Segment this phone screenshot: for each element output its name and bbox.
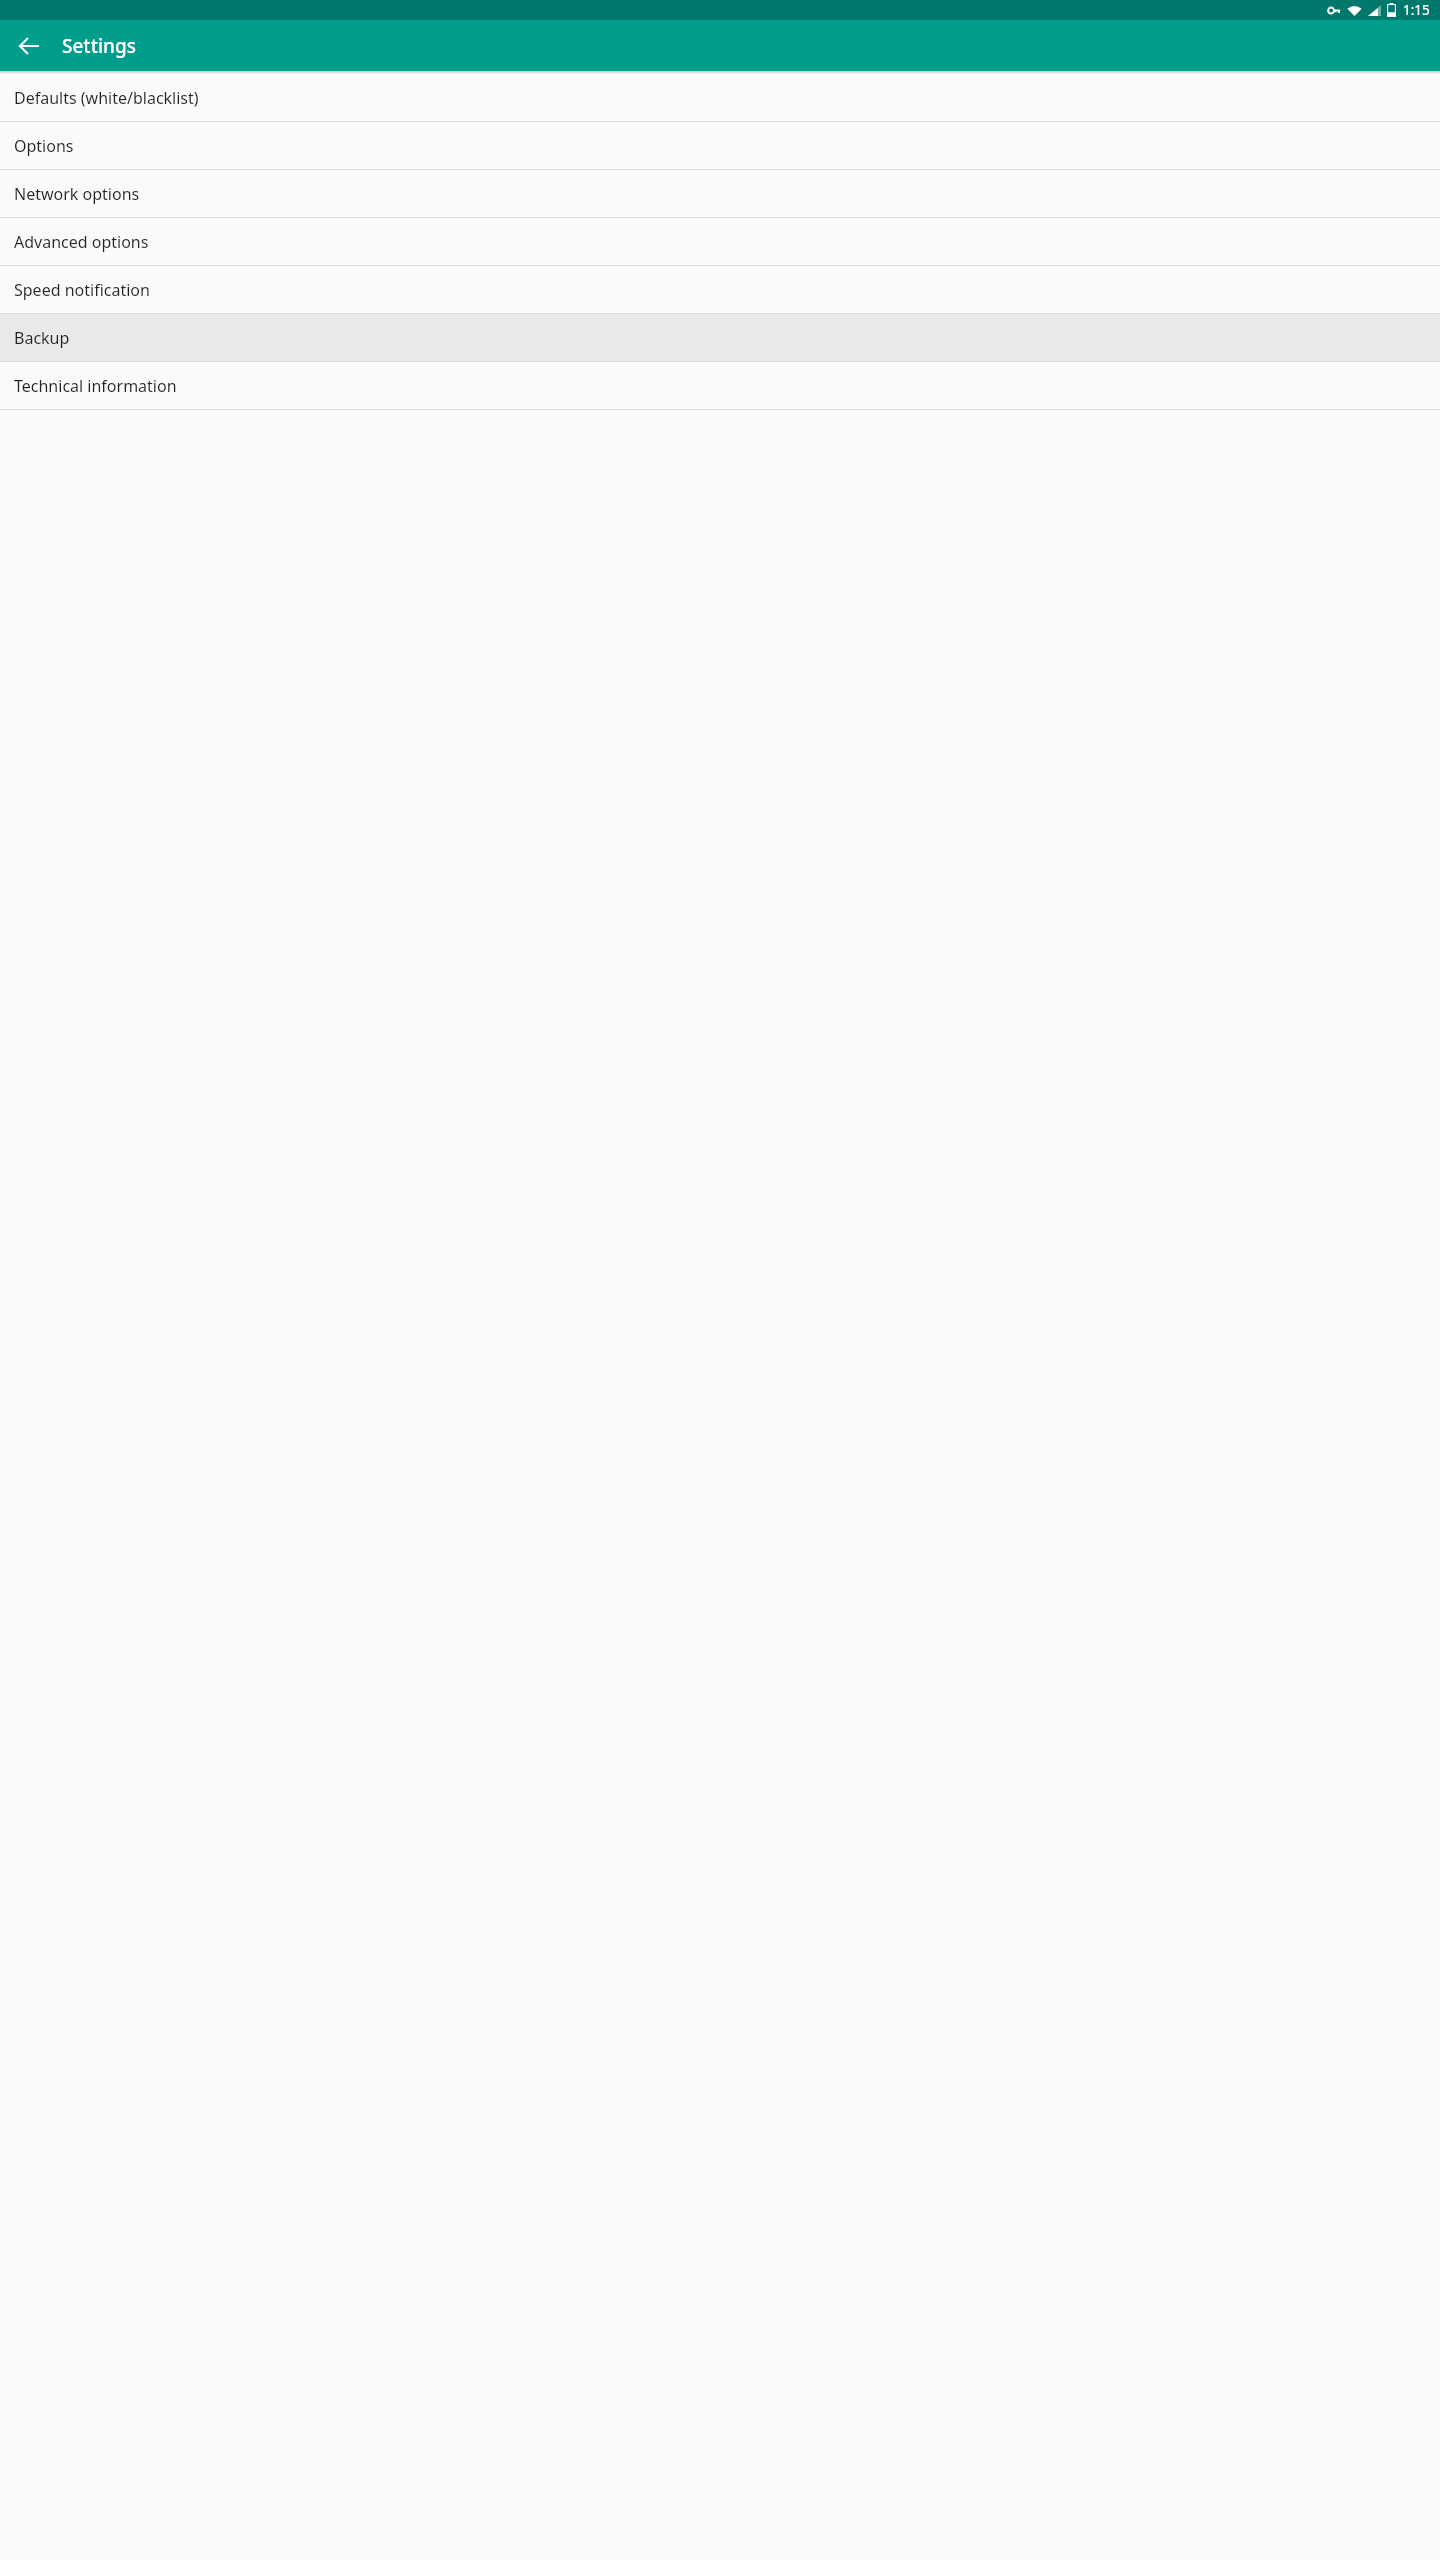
staticText: Backup [14,327,70,349]
staticText: Settings [62,33,136,59]
staticText: Advanced options [14,231,149,253]
staticText: Speed notification [14,279,150,301]
staticText: Network options [14,183,140,205]
button[interactable]: Back [5,22,53,70]
button[interactable]: Network options [0,170,1440,217]
staticText: Defaults (white/blacklist) [14,87,199,109]
button[interactable]: Defaults (white/blacklist) [0,74,1440,121]
staticText: Technical information [14,375,177,397]
button[interactable]: Advanced options [0,218,1440,265]
button[interactable]: Technical information [0,362,1440,409]
staticText: Options [14,135,74,157]
button[interactable]: Options [0,122,1440,169]
staticText: 1:15 [1403,1,1430,19]
button[interactable]: Backup [0,314,1440,361]
button[interactable]: Speed notification [0,266,1440,313]
